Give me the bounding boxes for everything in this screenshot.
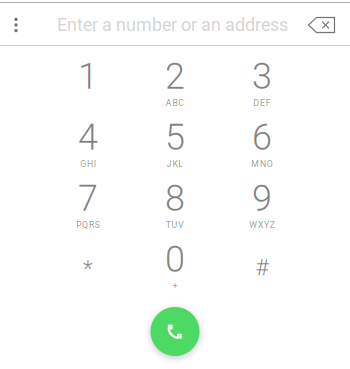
staticText: GHI bbox=[80, 159, 96, 169]
button[interactable]: 2 bbox=[131, 53, 218, 114]
staticText: 2 bbox=[165, 55, 185, 98]
staticText: # bbox=[255, 254, 268, 281]
staticText: 0 bbox=[165, 238, 185, 281]
staticText: 3 bbox=[252, 55, 272, 98]
button[interactable]: 3 bbox=[218, 53, 305, 114]
staticText: WXYZ bbox=[249, 220, 275, 230]
staticText: 8 bbox=[165, 177, 185, 220]
staticText: PQRS bbox=[76, 220, 100, 230]
staticText: JKL bbox=[167, 159, 183, 169]
button[interactable]: Call bbox=[150, 307, 199, 356]
button[interactable]: 0 bbox=[131, 236, 218, 297]
button[interactable]: 4 bbox=[44, 114, 131, 175]
staticText: DEF bbox=[253, 98, 271, 108]
staticText: 4 bbox=[78, 116, 98, 159]
staticText: * bbox=[83, 255, 93, 282]
staticText: 1 bbox=[78, 55, 98, 98]
staticText: ABC bbox=[166, 98, 184, 108]
button[interactable]: 1 bbox=[44, 53, 131, 114]
staticText: Enter a number or an address bbox=[57, 14, 288, 35]
staticText: + bbox=[172, 281, 177, 291]
staticText: 7 bbox=[78, 177, 98, 220]
button[interactable]: 8 bbox=[131, 175, 218, 236]
staticText: MNO bbox=[251, 159, 273, 169]
button[interactable]: 6 bbox=[218, 114, 305, 175]
button[interactable]: * bbox=[44, 236, 131, 297]
button[interactable]: 9 bbox=[218, 175, 305, 236]
button[interactable]: 7 bbox=[44, 175, 131, 236]
button[interactable]: Delete bbox=[300, 3, 343, 46]
staticText: 9 bbox=[252, 177, 272, 220]
staticText: TUV bbox=[166, 220, 184, 230]
button[interactable]: 5 bbox=[131, 114, 218, 175]
button[interactable]: More options bbox=[0, 3, 32, 46]
button[interactable]: # bbox=[218, 236, 305, 297]
staticText: 6 bbox=[252, 116, 272, 159]
staticText: 5 bbox=[165, 116, 185, 159]
